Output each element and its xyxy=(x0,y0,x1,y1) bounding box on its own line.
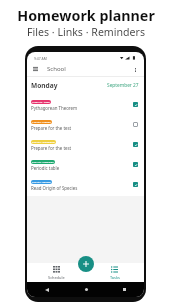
button[interactable]: 1:00 PM · Physics xyxy=(27,116,144,136)
staticText: Tasks xyxy=(110,275,120,280)
staticText: Schedule xyxy=(48,275,65,280)
staticText: Periodic table xyxy=(31,165,60,171)
button[interactable]: 2:00 PM · Geography xyxy=(27,136,144,156)
staticText: 12:00 PM · Math xyxy=(32,101,50,104)
button[interactable]: 4:00 PM · Biology xyxy=(27,176,144,196)
staticText: 4:00 PM · Biology xyxy=(32,181,51,184)
button[interactable]: Add task xyxy=(78,256,94,272)
staticText: Homework planner xyxy=(0,6,172,25)
button[interactable]: Tasks xyxy=(85,263,144,282)
button[interactable]: Toggle task xyxy=(132,181,139,188)
button[interactable]: Toggle task xyxy=(132,101,139,108)
staticText: 2:00 PM · Geography xyxy=(32,141,55,144)
button[interactable]: More options xyxy=(132,66,139,73)
staticText: 9:47 AM xyxy=(34,56,47,61)
button[interactable]: Toggle task xyxy=(132,121,139,128)
staticText: Monday xyxy=(31,81,58,90)
staticText: September 27 xyxy=(107,82,139,89)
button[interactable]: 3:00 AM · Chemistry xyxy=(27,156,144,176)
staticText: Prepare for the test xyxy=(31,145,72,151)
button[interactable]: Toggle task xyxy=(132,161,139,168)
staticText: Pythagorean Theorem xyxy=(31,105,78,111)
button[interactable]: 12:00 PM · Math xyxy=(27,96,144,116)
button[interactable]: Navigation menu xyxy=(33,65,41,73)
button[interactable]: Schedule xyxy=(27,263,85,282)
staticText: 3:00 AM · Chemistry xyxy=(32,161,54,164)
staticText: School xyxy=(47,65,66,73)
button[interactable]: Toggle task xyxy=(132,141,139,148)
staticText: 1:00 PM · Physics xyxy=(32,121,51,124)
staticText: Prepare for the test xyxy=(31,125,72,131)
staticText: Files · Links · Reminders xyxy=(0,25,172,39)
staticText: Read Origin of Species xyxy=(31,185,78,191)
